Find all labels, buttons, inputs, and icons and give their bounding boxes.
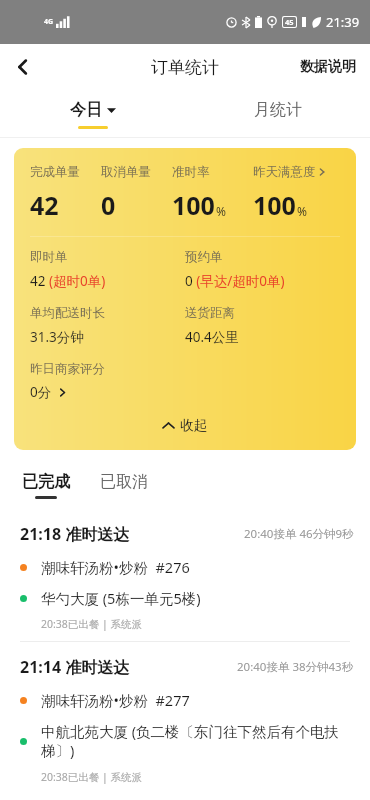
staticText: 潮味轩汤粉•炒粉 #276 <box>41 557 190 577</box>
button[interactable]: 收起 <box>30 415 340 436</box>
staticText: 完成单量 <box>30 164 80 180</box>
staticText: 昨日商家评分 <box>30 361 105 377</box>
staticText: 0 <box>101 188 116 222</box>
staticText: 准时率 <box>172 164 210 180</box>
button[interactable]: 21:18 准时送达 <box>0 509 370 641</box>
staticText: 送货距离 <box>185 305 235 321</box>
staticText: 收起 <box>180 417 207 434</box>
staticText: 0分 <box>30 383 52 401</box>
staticText: 预约单 <box>185 249 223 265</box>
staticText: 100 <box>172 188 215 222</box>
staticText: % <box>216 203 226 219</box>
staticText: 20:38已出餐 | 系统派 <box>41 617 143 631</box>
staticText: 单均配送时长 <box>30 305 105 321</box>
staticText: 4G <box>44 17 54 27</box>
staticText: 20:40接单 46分钟9秒 <box>244 526 354 542</box>
staticText: 21:14 准时送达 <box>20 656 130 678</box>
staticText: 订单统计 <box>151 57 219 78</box>
staticText: 31.3分钟 <box>30 328 84 346</box>
button[interactable]: 0分 <box>30 383 67 401</box>
button[interactable]: 返回 <box>0 44 46 90</box>
staticText: 昨天满意度 <box>253 164 316 180</box>
staticText: 今日 <box>70 100 102 120</box>
staticText: 20:40接单 38分钟43秒 <box>237 659 354 675</box>
staticText: 42 (超时0单) <box>30 272 106 290</box>
staticText: 取消单量 <box>101 164 151 180</box>
button[interactable]: 数据说明 <box>286 48 370 86</box>
staticText: 20:38已出餐 | 系统派 <box>41 770 143 784</box>
staticText: 100 <box>253 188 296 222</box>
staticText: 21:39 <box>326 13 360 31</box>
staticText: 数据说明 <box>300 58 356 76</box>
staticText: 月统计 <box>254 100 302 120</box>
staticText: 45 <box>285 17 294 27</box>
staticText: 华勺大厦 (5栋一单元5楼) <box>41 588 201 608</box>
button[interactable]: 已取消 <box>98 468 150 503</box>
staticText: 42 <box>30 188 59 222</box>
staticText: 已完成 <box>22 472 70 492</box>
button[interactable]: 已完成 <box>20 468 72 503</box>
staticText: % <box>297 203 307 219</box>
button[interactable]: 完成单量 <box>14 148 356 450</box>
button[interactable]: 21:14 准时送达 <box>0 642 370 794</box>
staticText: 即时单 <box>30 249 68 265</box>
staticText: 已取消 <box>100 472 148 492</box>
staticText: 潮味轩汤粉•炒粉 #277 <box>41 690 190 710</box>
staticText: 21:18 准时送达 <box>20 523 130 545</box>
button[interactable]: 月统计 <box>185 90 370 138</box>
button[interactable]: 今日 <box>0 90 185 138</box>
staticText: 40.4公里 <box>185 328 239 346</box>
staticText: 0 (早达/超时0单) <box>185 272 285 290</box>
staticText: 中航北苑大厦 (负二楼〔东门往下然后有个电扶梯〕) <box>41 721 354 761</box>
